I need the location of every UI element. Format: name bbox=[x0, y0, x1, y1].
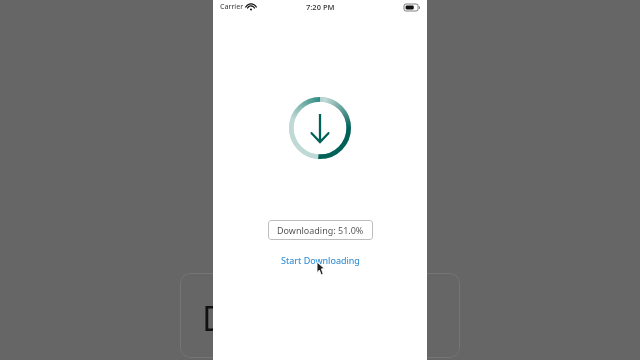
staticText: 7:20 PM bbox=[306, 2, 335, 12]
button[interactable]: Start Downloading bbox=[275, 251, 366, 269]
other: Download bbox=[310, 114, 330, 142]
button[interactable]: Downloading: 51.0% bbox=[268, 220, 373, 240]
staticText: Start Downloading bbox=[281, 254, 360, 266]
staticText: Do bbox=[202, 295, 248, 341]
staticText: Downloading: 51.0% bbox=[277, 224, 364, 236]
staticText: Carrier bbox=[220, 2, 244, 12]
